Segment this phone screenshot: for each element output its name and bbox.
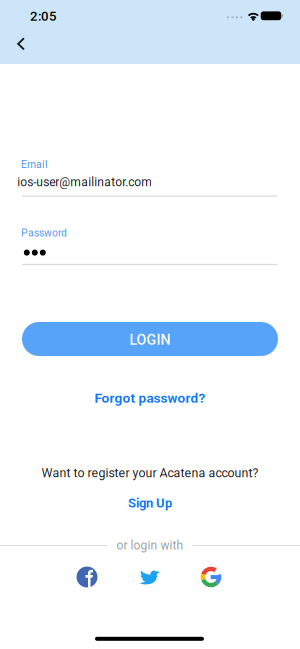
button[interactable]: Log in with Facebook — [76, 566, 97, 587]
staticText: or login with — [116, 538, 183, 553]
button[interactable]: Log in with Google — [200, 566, 221, 587]
staticText: Sign Up — [128, 495, 172, 511]
button[interactable]: Sign Up — [128, 495, 172, 511]
staticText: Forgot password? — [94, 390, 205, 406]
staticText: ios-user@mailinator.com — [17, 175, 152, 189]
button[interactable]: Back — [13, 33, 29, 55]
button[interactable]: Forgot password? — [94, 390, 205, 406]
staticText: Password — [21, 227, 67, 239]
staticText: LOGIN — [129, 332, 170, 348]
staticText: Want to register your Acatena account? — [41, 466, 258, 480]
button[interactable]: Log in with Twitter — [138, 568, 160, 586]
staticText: 2:05 — [30, 9, 57, 24]
staticText: Email — [21, 158, 48, 170]
button[interactable]: LOGIN — [22, 322, 278, 356]
